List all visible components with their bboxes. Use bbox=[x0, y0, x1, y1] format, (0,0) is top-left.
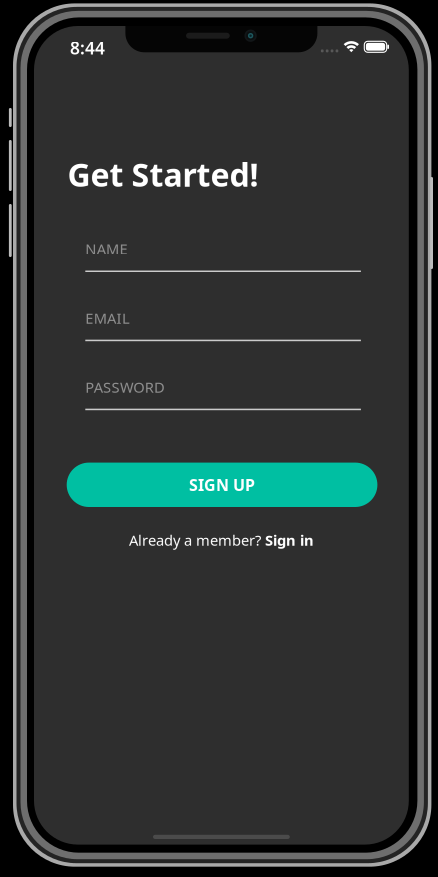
staticText: NAME bbox=[85, 239, 127, 258]
staticText: PASSWORD bbox=[85, 377, 165, 397]
staticText: Already a member? bbox=[129, 530, 265, 550]
staticText: EMAIL bbox=[85, 308, 130, 328]
staticText: Sign in bbox=[265, 530, 314, 550]
staticText: Get Started! bbox=[68, 153, 259, 195]
button[interactable]: SIGN UP bbox=[67, 463, 377, 507]
button[interactable]: Already a member? bbox=[111, 529, 331, 551]
staticText: SIGN UP bbox=[189, 474, 255, 495]
staticText: 8:44 bbox=[70, 36, 105, 59]
